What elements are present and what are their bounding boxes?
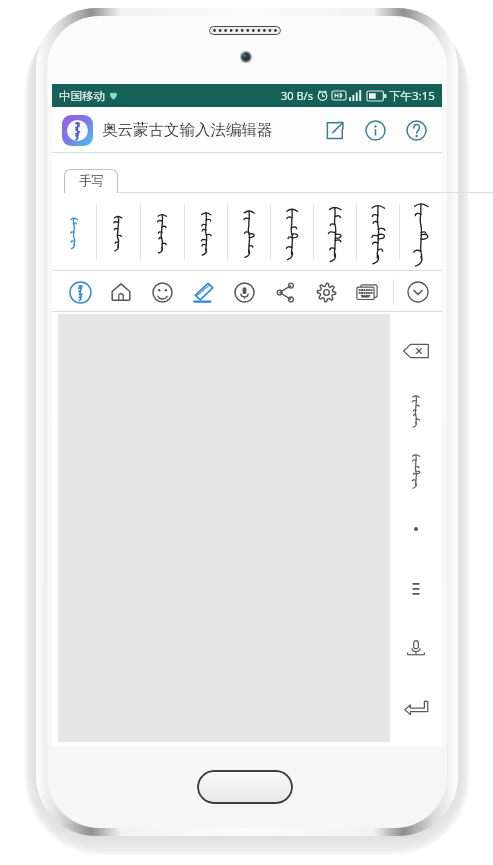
button[interactable]: Dot [392,508,440,550]
button[interactable]: Handwriting [186,273,220,311]
button[interactable]: Keyboard [350,273,384,311]
button[interactable]: Home [104,273,138,311]
button[interactable]: Mongolian key 1 [392,389,440,431]
staticText: 手写 [79,173,104,189]
staticText: 下午3:15 [389,88,435,104]
button[interactable]: Help [400,114,432,146]
button[interactable]: Voice input [227,273,261,311]
button[interactable]: Emoji [145,273,179,311]
button[interactable]: Candidate 5 [227,193,270,271]
button[interactable]: Settings [309,273,343,311]
button[interactable]: Home button [197,770,293,804]
staticText: 中国移动 [59,89,105,103]
button[interactable]: Information [359,114,391,146]
button[interactable]: Candidate 9 [399,193,442,271]
button[interactable]: Candidate 7 [313,193,356,271]
button[interactable]: Enter [392,687,440,729]
staticText: 30 B/s [281,88,313,103]
button[interactable]: App icon [62,115,93,146]
button[interactable]: Mongolian key 2 [392,449,440,491]
button[interactable]: Backspace [392,330,440,372]
button[interactable]: Input method [63,273,97,311]
button[interactable]: Share [318,114,350,146]
button[interactable]: 手写 [64,169,118,193]
button[interactable]: Candidate 6 [270,193,313,271]
button[interactable]: Voice input [392,627,440,669]
button[interactable]: Candidate 1 [52,193,96,271]
button[interactable]: Candidate 3 [140,193,184,271]
staticText: 奥云蒙古文输入法编辑器 [102,120,273,140]
button[interactable]: Collapse keyboard [394,271,442,312]
button[interactable]: Symbols [392,568,440,610]
button[interactable]: Candidate 4 [184,193,227,271]
button[interactable]: Candidate 8 [356,193,399,271]
button[interactable]: Share [268,273,302,311]
button[interactable]: Candidate 2 [96,193,140,271]
